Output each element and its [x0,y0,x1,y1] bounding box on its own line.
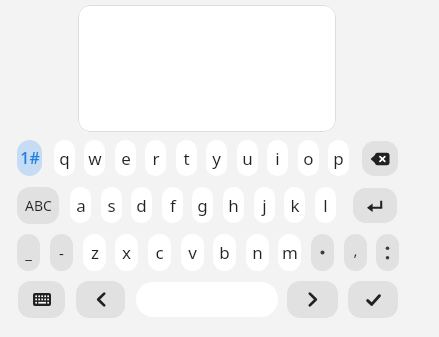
button[interactable]: m [278,234,301,271]
staticText: u [242,147,253,170]
staticText: y [212,147,221,170]
button[interactable]: q [54,140,75,176]
button[interactable] [76,281,125,318]
button[interactable]: e [115,140,136,176]
button[interactable]: d [131,187,152,223]
button[interactable] [362,141,398,176]
staticText: h [228,194,239,217]
button[interactable] [78,5,336,132]
staticText: k [290,194,300,217]
staticText: i [275,147,280,170]
button[interactable]: h [223,187,244,223]
button[interactable] [18,281,65,318]
button[interactable]: k [284,187,305,223]
staticText: s [107,194,116,217]
staticText: d [136,194,147,217]
button[interactable]: z [83,234,106,271]
staticText: j [262,194,267,217]
button[interactable]: v [181,234,204,271]
button[interactable]: ABC [17,187,59,224]
staticText: o [303,147,314,170]
button[interactable]: w [84,140,105,176]
button[interactable] [348,281,398,318]
staticText: m [282,241,298,264]
button[interactable]: p [328,140,349,176]
button[interactable] [311,234,334,271]
staticText: _ [25,243,32,263]
button[interactable]: r [145,140,166,176]
staticText: 1# [20,147,40,169]
staticText: t [183,147,190,170]
staticText: x [122,241,131,264]
button[interactable]: _ [17,234,40,271]
staticText: f [170,194,176,217]
button[interactable] [287,281,338,318]
button[interactable]: f [162,187,183,223]
button[interactable]: t [176,140,197,176]
button[interactable]: y [206,140,227,176]
staticText: ABC [25,196,52,215]
button[interactable]: o [298,140,319,176]
staticText: v [188,241,197,264]
button[interactable]: s [101,187,122,223]
button[interactable]: i [267,140,288,176]
button[interactable] [376,234,399,271]
button[interactable]: 1# [17,140,42,176]
button[interactable]: g [192,187,213,223]
staticText: a [76,194,86,217]
button[interactable]: - [50,234,73,271]
button[interactable]: x [115,234,138,271]
staticText: r [152,147,160,170]
staticText: q [59,147,70,170]
staticText: l [323,194,328,217]
button[interactable]: u [237,140,258,176]
button[interactable]: b [213,234,236,271]
button[interactable]: a [70,187,91,223]
button[interactable]: j [254,187,275,223]
staticText: , [353,240,358,260]
staticText: w [88,147,102,170]
button[interactable]: n [246,234,269,271]
staticText: n [252,241,263,264]
staticText: g [197,194,208,217]
staticText: b [219,241,230,264]
button[interactable]: c [148,234,171,271]
button[interactable]: , [344,234,367,271]
button[interactable] [353,188,397,223]
staticText: - [59,243,64,263]
staticText: e [121,147,131,170]
staticText: p [333,147,344,170]
staticText: z [91,241,99,264]
staticText: c [155,241,164,264]
button[interactable]: l [315,187,336,223]
